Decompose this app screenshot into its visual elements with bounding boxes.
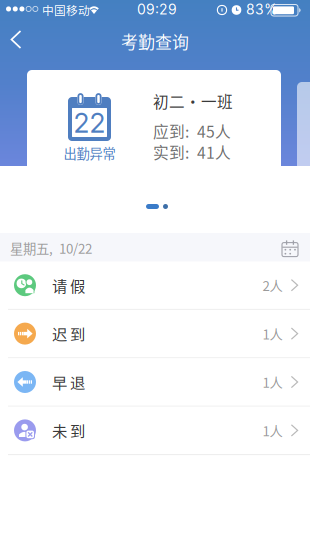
button[interactable]: 早 退 bbox=[0, 358, 310, 407]
button[interactable]: Back bbox=[0, 20, 44, 62]
button[interactable]: 未 到 bbox=[0, 407, 310, 455]
staticText: 22 bbox=[73, 107, 105, 139]
staticText: 83% bbox=[246, 1, 278, 18]
staticText: 2人 bbox=[262, 275, 282, 295]
staticText: 请 假 bbox=[52, 274, 85, 296]
staticText: 考勤查询 bbox=[121, 29, 189, 53]
staticText: 1人 bbox=[262, 421, 282, 440]
button[interactable]: Pick date bbox=[281, 233, 310, 263]
button[interactable]: 请 假 bbox=[0, 261, 310, 310]
staticText: 1人 bbox=[262, 372, 282, 392]
staticText: 应到: 45人 bbox=[153, 120, 231, 142]
staticText: 中国移动 bbox=[42, 1, 90, 18]
staticText: 实到: 41人 bbox=[153, 141, 231, 163]
staticText: 1人 bbox=[262, 324, 282, 343]
staticText: 出勤异常 bbox=[63, 143, 115, 163]
staticText: 09:29 bbox=[137, 1, 177, 18]
button[interactable]: 迟 到 bbox=[0, 310, 310, 358]
staticText: 未 到 bbox=[52, 419, 85, 441]
staticText: 早 退 bbox=[52, 371, 85, 393]
staticText: 初二·一班 bbox=[153, 90, 233, 112]
staticText: 迟 到 bbox=[52, 322, 85, 345]
staticText: 星期五, 10/22 bbox=[10, 238, 92, 258]
